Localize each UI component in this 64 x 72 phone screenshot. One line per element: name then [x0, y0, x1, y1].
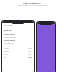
- staticText: Payment method: [4, 40, 16, 42]
- button[interactable]: Delivery: [4, 51, 32, 53]
- staticText: 123 Main Street, Apt 4: [4, 37, 17, 39]
- staticText: $42,00: [28, 48, 32, 50]
- staticText: Video Competition: [23, 2, 41, 5]
- button[interactable]: Taxes: [4, 54, 32, 56]
- staticText: Delivery address: [4, 34, 15, 36]
- staticText: Order summary: [4, 25, 13, 27]
- button[interactable]: Subtotal: [4, 48, 32, 50]
- button[interactable]: Total: [4, 57, 32, 59]
- staticText: $48,00: [28, 57, 32, 59]
- staticText: Capture and share your best moments toda…: [18, 5, 47, 7]
- staticText: $2,00: [28, 54, 32, 56]
- staticText: Subtotal: [4, 48, 9, 50]
- staticText: $48,00: [4, 28, 12, 31]
- staticText: Taxes: [4, 54, 8, 56]
- staticText: $4,00: [28, 51, 32, 53]
- staticText: Visa ending 4242: [4, 43, 14, 45]
- staticText: Delivery: [4, 51, 9, 53]
- staticText: Total: [4, 57, 7, 59]
